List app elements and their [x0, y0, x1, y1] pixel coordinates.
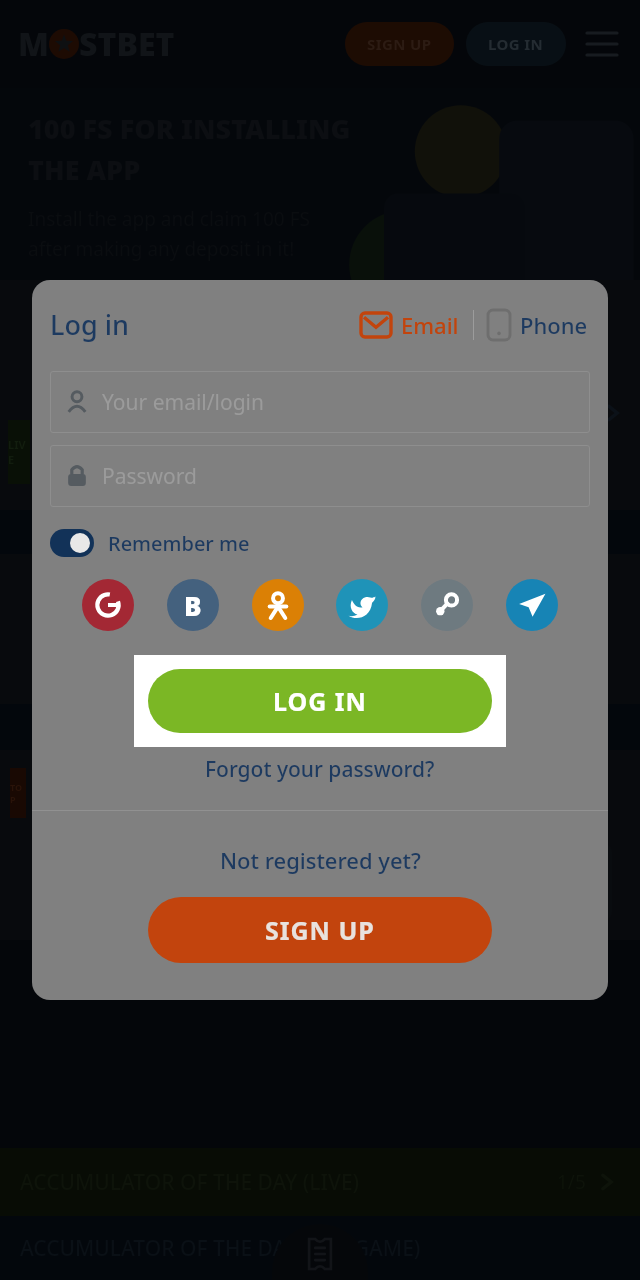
staticText: Sri L	[406, 772, 445, 798]
button[interactable]: W2	[164, 844, 292, 920]
staticText: TOP	[10, 781, 26, 805]
button[interactable]: Sign in	[421, 579, 473, 631]
button[interactable]: TOP	[4, 754, 316, 936]
button[interactable]: Your email/login	[50, 371, 590, 433]
staticText: Email	[401, 310, 459, 340]
button[interactable]: SIGN UP	[345, 22, 454, 66]
staticText: LOG IN	[488, 34, 544, 54]
button[interactable]: TOP	[324, 754, 636, 936]
button[interactable]: Remember me	[50, 529, 250, 557]
button[interactable]: LOG IN	[466, 22, 566, 66]
staticText: 10.5	[209, 883, 247, 909]
button[interactable]: SIGN UP	[148, 897, 492, 963]
button[interactable]: Betslip	[272, 1224, 368, 1280]
staticText: STBET	[79, 22, 175, 66]
staticText: LOG IN	[273, 684, 367, 718]
button[interactable]: W1	[356, 844, 483, 920]
staticText: Log in	[50, 306, 129, 343]
staticText: Your email/login	[102, 388, 264, 417]
staticText: Bangladesh	[86, 802, 192, 828]
staticText: Forgot your password?	[205, 755, 435, 784]
staticText: W2	[217, 855, 240, 875]
staticText: LIVE	[8, 437, 30, 467]
staticText: New	[406, 802, 446, 828]
button[interactable]: Phone	[488, 310, 588, 340]
button[interactable]: LOG IN	[148, 669, 492, 733]
button[interactable]: W2	[484, 844, 612, 920]
staticText: SIGN UP	[367, 34, 432, 54]
staticText: Not registered yet?	[220, 845, 421, 875]
staticText: Remember me	[108, 530, 250, 557]
staticText: TOP	[330, 781, 346, 805]
staticText: 1.	[411, 883, 428, 909]
button[interactable]: Sign in	[82, 579, 134, 631]
button[interactable]: Sign in	[336, 579, 388, 631]
button[interactable]: Sign in	[252, 579, 304, 631]
button[interactable]: Menu	[582, 24, 622, 64]
button[interactable]: Sign in	[167, 579, 219, 631]
button[interactable]: Forgot your password?	[205, 755, 435, 784]
button[interactable]: Sign in	[506, 579, 558, 631]
staticText: 26.09	[356, 795, 392, 814]
staticText: W1	[408, 855, 431, 875]
staticText: Password	[102, 462, 197, 491]
button[interactable]: Email	[361, 310, 459, 340]
staticText: Phone	[520, 310, 588, 340]
button[interactable]: Password	[50, 445, 590, 507]
staticText: B	[184, 588, 202, 623]
staticText: THE APP	[28, 151, 141, 188]
staticText: M	[18, 22, 49, 66]
staticText: SIGN UP	[265, 913, 375, 947]
button[interactable]: W1	[36, 844, 163, 920]
staticText: 100 FS FOR INSTALLING	[28, 110, 351, 147]
staticText: 07:30	[356, 772, 392, 791]
staticText: ACCUMULATOR OF THE DAY (PRE-GAME)	[20, 1234, 421, 1263]
staticText: 27.09	[36, 795, 72, 814]
